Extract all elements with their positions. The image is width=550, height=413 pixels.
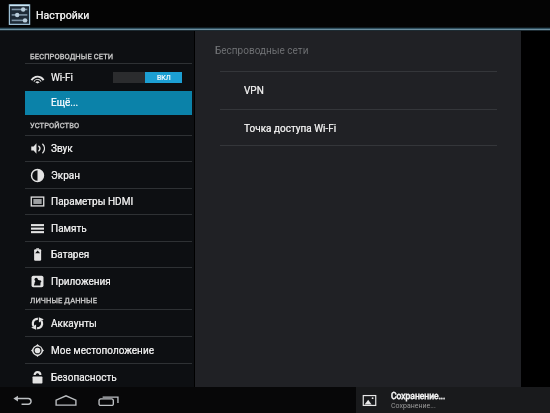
staticText: Ещё... xyxy=(51,97,79,109)
staticText: Настройки xyxy=(36,9,90,21)
staticText: Аккаунты xyxy=(51,318,97,330)
button[interactable]: Ещё... xyxy=(25,91,192,115)
staticText: Память xyxy=(51,223,87,235)
staticText: БЕСПРОВОДНЫЕ СЕТИ xyxy=(30,52,114,61)
button[interactable]: ВКЛ xyxy=(113,72,182,83)
staticText: УСТРОЙСТВО xyxy=(30,121,80,130)
staticText: ЛИЧНЫЕ ДАННЫЕ xyxy=(30,296,97,305)
button[interactable]: Точка доступа Wi-Fi xyxy=(220,110,497,147)
staticText: Батарея xyxy=(51,249,90,261)
button[interactable]: Параметры HDMI xyxy=(25,188,192,215)
button[interactable]: Мое местоположение xyxy=(25,337,192,364)
button[interactable]: Память xyxy=(25,215,192,242)
button[interactable]: Сохранение... xyxy=(356,387,550,413)
button[interactable]: Батарея xyxy=(25,241,192,268)
staticText: Приложения xyxy=(51,276,111,288)
button[interactable]: Аккаунты xyxy=(25,310,192,337)
button[interactable]: Экран xyxy=(25,162,192,189)
button[interactable]: Home xyxy=(44,387,87,413)
staticText: Сохранение... xyxy=(391,391,446,401)
staticText: Точка доступа Wi-Fi xyxy=(244,123,337,135)
button[interactable]: Settings xyxy=(8,4,31,25)
button[interactable]: VPN xyxy=(220,72,497,109)
button[interactable]: Wi-Fi xyxy=(25,64,192,91)
staticText: Экран xyxy=(51,170,80,182)
button[interactable]: Приложения xyxy=(25,268,192,295)
staticText: Безопасность xyxy=(51,372,117,384)
button[interactable]: Безопасность xyxy=(25,364,192,391)
staticText: VPN xyxy=(244,85,264,97)
button[interactable]: Звук xyxy=(25,135,192,162)
staticText: Мое местоположение xyxy=(51,345,154,357)
staticText: Wi-Fi xyxy=(51,72,74,84)
staticText: Параметры HDMI xyxy=(51,196,134,208)
button[interactable]: Back xyxy=(0,387,44,413)
staticText: ВКЛ xyxy=(157,74,171,82)
staticText: Беспроводные сети xyxy=(215,45,309,57)
staticText: Звук xyxy=(51,143,73,155)
button[interactable]: Recent apps xyxy=(87,387,130,413)
staticText: Сохранение... xyxy=(391,402,436,410)
